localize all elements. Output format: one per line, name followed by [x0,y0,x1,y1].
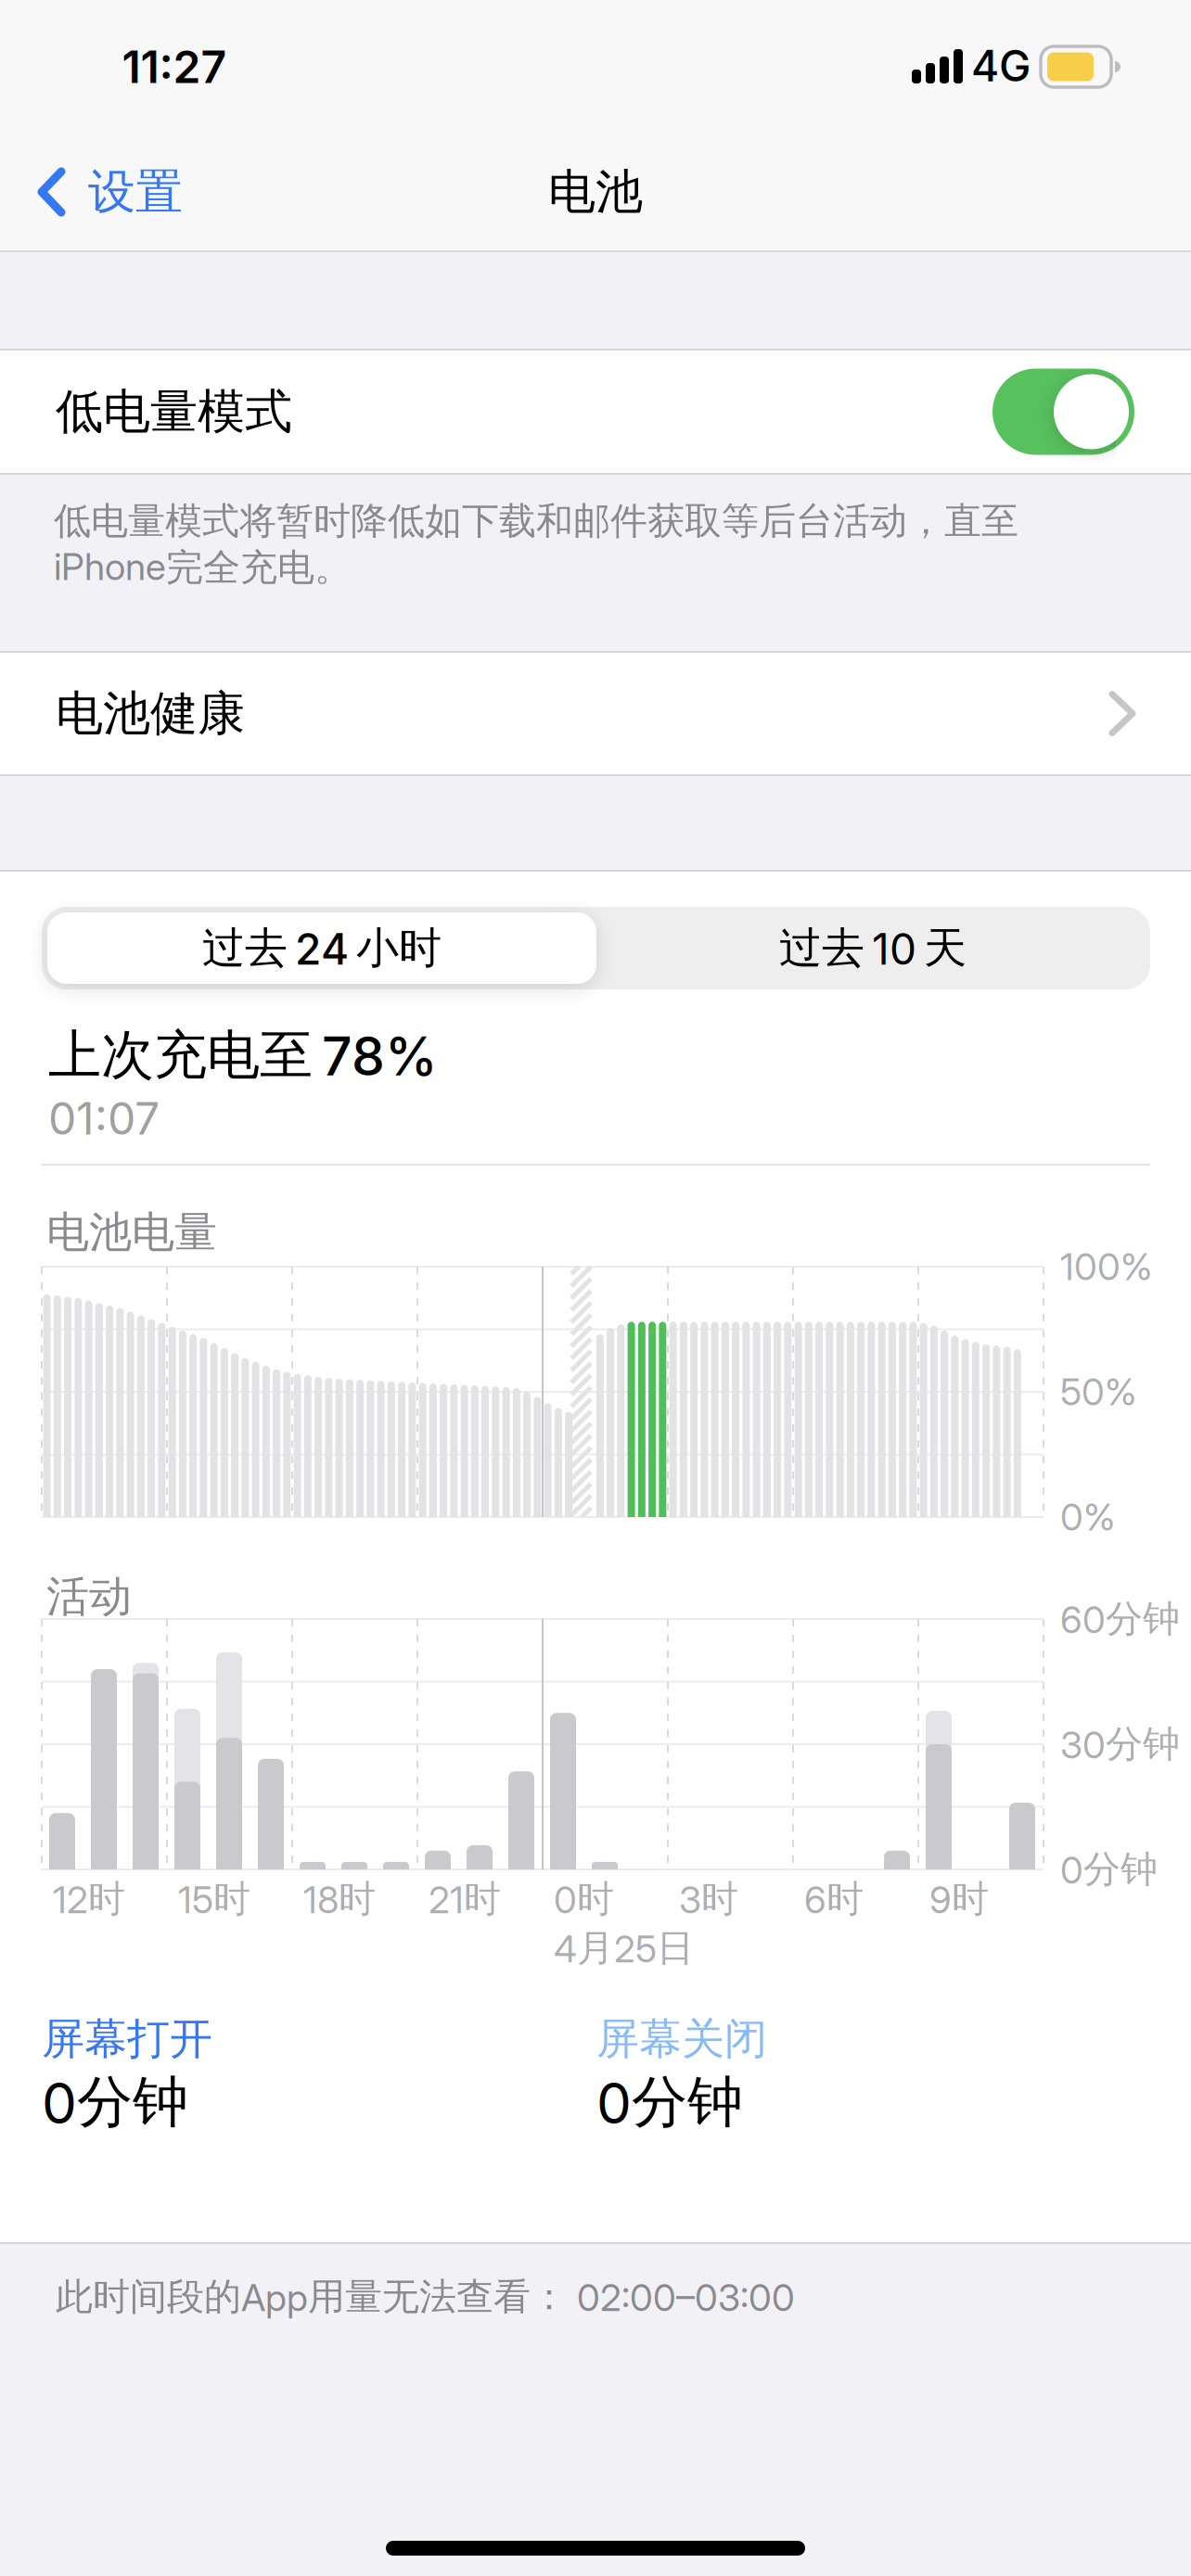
staticText: 6时 [804,1876,864,1922]
staticText: 0% [1060,1495,1115,1539]
staticText: 21时 [429,1876,501,1922]
staticText: 上次充电至 78% [48,1023,438,1088]
staticText: iPhone完全充电。 [54,545,352,590]
staticText: 电池健康 [56,685,245,743]
staticText: 4月25日 [554,1925,694,1971]
staticText: 50% [1060,1370,1136,1414]
staticText: 60分钟 [1060,1596,1180,1642]
button[interactable] [992,369,1134,455]
button[interactable]: 电池健康 [0,653,1191,774]
staticText: 12时 [53,1876,125,1922]
staticText: 活动 [46,1571,132,1623]
button[interactable]: 过去 24 小时 [47,912,596,984]
staticText: 01:07 [48,1092,160,1145]
staticText: 电池 [548,163,643,221]
staticText: 100% [1060,1245,1152,1289]
staticText: 屏幕打开 [42,2013,212,2065]
staticText: 过去 24 小时 [202,922,442,974]
staticText: 15时 [178,1876,250,1922]
staticText: 3时 [679,1876,738,1922]
staticText: 0分钟 [42,2068,188,2136]
staticText: 30分钟 [1060,1721,1180,1767]
staticText: 低电量模式将暂时降低如下载和邮件获取等后台活动，直至 [54,498,1018,544]
staticText: 电池电量 [46,1206,217,1259]
staticText: 0分钟 [1060,1847,1158,1892]
button[interactable]: 设置 [37,155,241,229]
staticText: 9时 [929,1876,989,1922]
staticText: 18时 [303,1876,376,1922]
staticText: 屏幕关闭 [596,2013,767,2065]
staticText: 0分钟 [596,2068,743,2136]
staticText: 4G [971,41,1031,91]
staticText: 0时 [554,1876,614,1922]
staticText: 此时间段的App用量无法查看： 02:00–03:00 [56,2274,795,2320]
button[interactable]: 过去 10 天 [599,909,1146,988]
staticText: 过去 10 天 [779,922,967,974]
staticText: 11:27 [122,41,227,93]
staticText: 低电量模式 [56,383,292,441]
staticText: 设置 [88,163,183,221]
